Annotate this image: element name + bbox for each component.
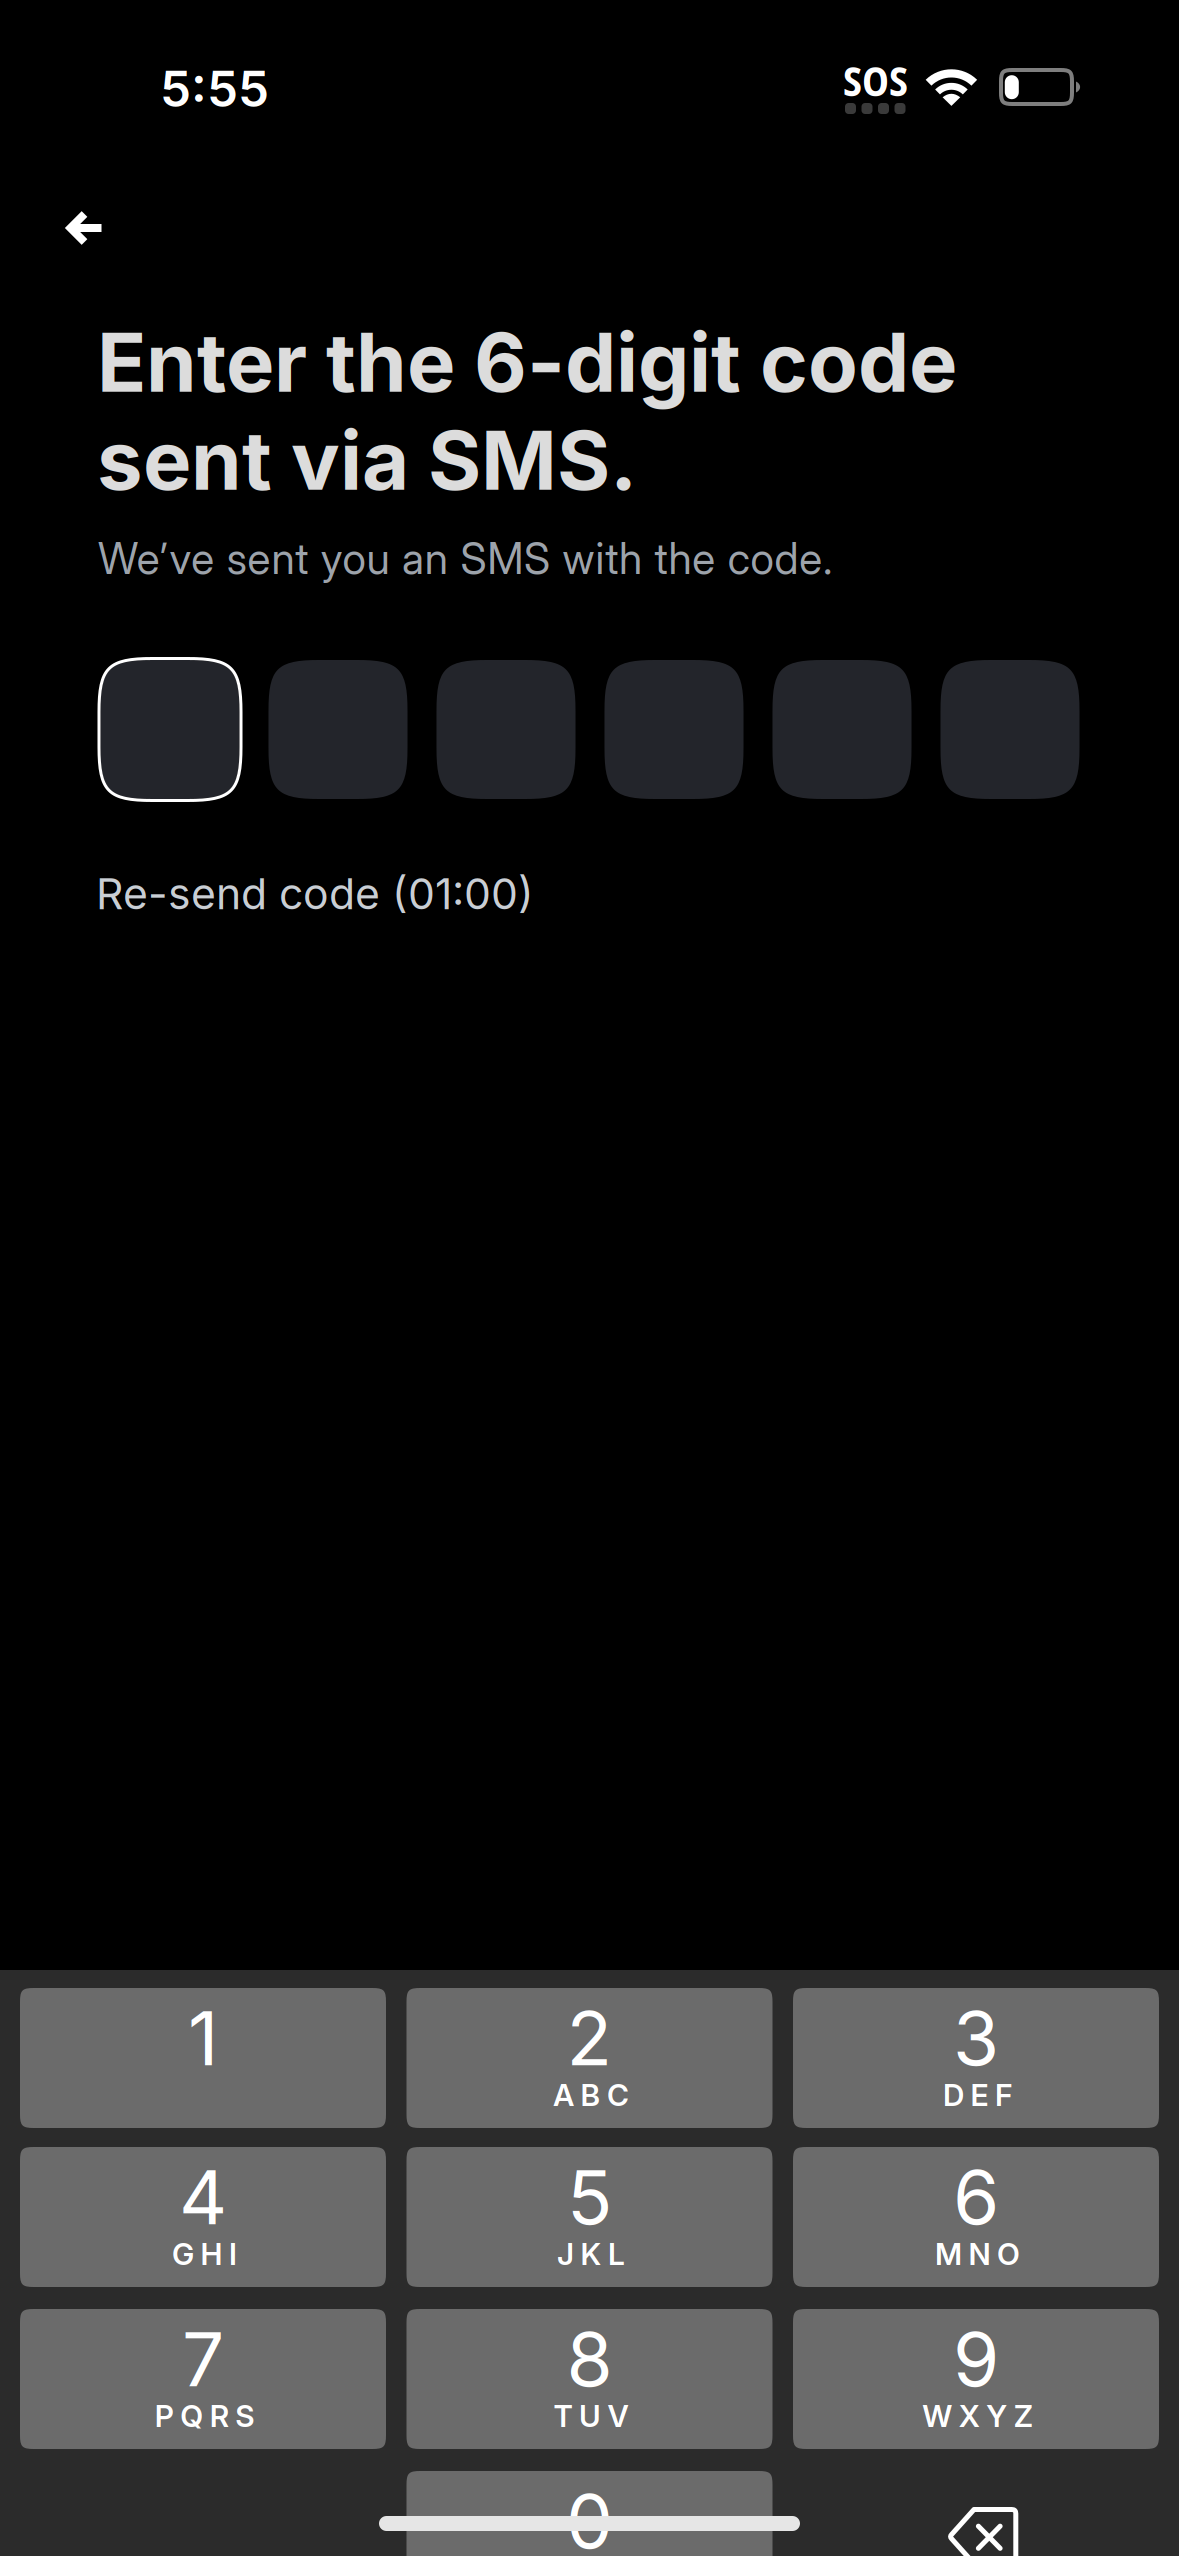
staticText: DEF (943, 2077, 1012, 2113)
button[interactable]: 8 (406, 2309, 772, 2449)
staticText: We’ve sent you an SMS with the code. (98, 533, 832, 584)
button[interactable]: 1 (20, 1988, 386, 2128)
button[interactable]: 7 (20, 2309, 386, 2449)
staticText: 0 (566, 2476, 613, 2556)
staticText: TUV (553, 2398, 628, 2434)
staticText: 4 (179, 2152, 227, 2242)
staticText: ABC (553, 2077, 629, 2113)
button[interactable]: Code digit (268, 660, 407, 799)
button[interactable]: 3 (793, 1988, 1159, 2128)
staticText: 5:55 (160, 59, 269, 119)
button[interactable]: 9 (793, 2309, 1159, 2449)
staticText: 6 (953, 2152, 999, 2242)
staticText: GHI (172, 2236, 237, 2272)
staticText: SOS (843, 52, 908, 108)
button[interactable]: 6 (793, 2147, 1159, 2287)
staticText: 2 (566, 1993, 612, 2083)
button[interactable]: Code digit (604, 660, 743, 799)
staticText: 9 (953, 2314, 999, 2404)
button[interactable]: Delete (947, 2505, 1021, 2556)
button[interactable]: Code digit (772, 660, 911, 799)
button[interactable]: 5 (406, 2147, 772, 2287)
staticText: Re-send code (01:00) (96, 868, 534, 920)
staticText: PQRS (155, 2398, 254, 2434)
staticText: 8 (566, 2314, 612, 2404)
staticText: WXYZ (922, 2398, 1033, 2434)
button[interactable]: 4 (20, 2147, 386, 2287)
staticText: sent via SMS. (97, 411, 637, 509)
button[interactable]: Code digit (436, 660, 575, 799)
button[interactable]: Back (36, 180, 136, 276)
staticText: 1 (188, 1993, 218, 2083)
staticText: MNO (935, 2236, 1020, 2272)
button[interactable]: Code digit (940, 660, 1079, 799)
staticText: 5 (567, 2152, 612, 2242)
staticText: Enter the 6-digit code (97, 313, 957, 411)
button[interactable]: Re-send code (01:00) (84, 856, 546, 932)
button[interactable]: Code digit (100, 660, 239, 799)
button[interactable]: 0 (406, 2471, 772, 2556)
staticText: 7 (182, 2314, 224, 2404)
button[interactable]: 2 (406, 1988, 772, 2128)
staticText: JKL (557, 2236, 625, 2272)
staticText: 3 (953, 1993, 999, 2083)
